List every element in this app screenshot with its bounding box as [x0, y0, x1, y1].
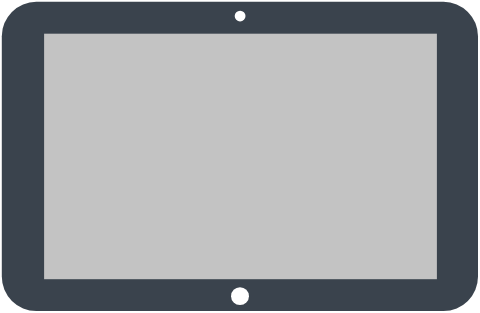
- button[interactable]: Home: [231, 287, 249, 305]
